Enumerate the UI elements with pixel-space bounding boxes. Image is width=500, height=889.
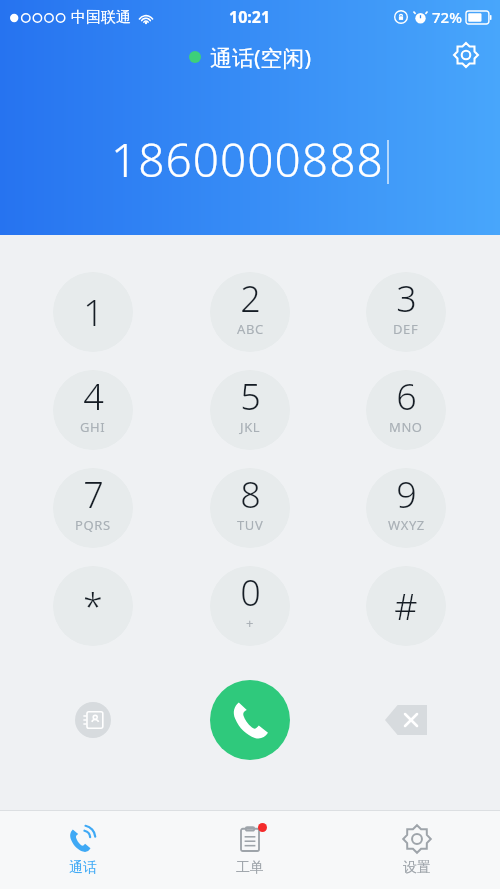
- button[interactable]: 0: [210, 566, 290, 646]
- button[interactable]: *: [53, 566, 133, 646]
- staticText: JKL: [240, 418, 261, 436]
- staticText: 中国联通: [71, 8, 131, 27]
- button[interactable]: 3: [366, 272, 446, 352]
- button[interactable]: #: [366, 566, 446, 646]
- button[interactable]: 9: [366, 468, 446, 548]
- staticText: 1860000888: [111, 128, 384, 191]
- button[interactable]: 6: [366, 370, 446, 450]
- staticText: 通话(空闲): [210, 42, 312, 72]
- button[interactable]: Delete: [380, 698, 432, 742]
- button[interactable]: 通话: [0, 811, 166, 889]
- staticText: 10:21: [229, 6, 271, 28]
- button[interactable]: Call: [210, 680, 290, 760]
- button[interactable]: Contacts: [71, 698, 115, 742]
- button[interactable]: 7: [53, 468, 133, 548]
- staticText: 4: [83, 372, 104, 421]
- staticText: 通话: [69, 859, 97, 877]
- staticText: 2: [240, 274, 261, 323]
- button[interactable]: 工单: [166, 811, 333, 889]
- staticText: 设置: [403, 859, 431, 877]
- staticText: 1: [83, 288, 104, 337]
- button[interactable]: Settings: [444, 33, 488, 77]
- staticText: *: [83, 582, 103, 631]
- staticText: +: [246, 614, 255, 632]
- staticText: 72%: [432, 7, 462, 27]
- staticText: 5: [240, 372, 261, 421]
- staticText: #: [394, 582, 418, 631]
- staticText: 工单: [236, 859, 264, 877]
- staticText: WXYZ: [388, 516, 425, 534]
- button[interactable]: 设置: [333, 811, 500, 889]
- staticText: 6: [396, 372, 417, 421]
- staticText: GHI: [80, 418, 106, 436]
- staticText: 9: [396, 470, 417, 519]
- staticText: DEF: [393, 320, 419, 338]
- staticText: ABC: [237, 320, 264, 338]
- staticText: 3: [396, 274, 417, 323]
- staticText: PQRS: [75, 516, 111, 534]
- staticText: 8: [240, 470, 261, 519]
- button[interactable]: 5: [210, 370, 290, 450]
- button[interactable]: 2: [210, 272, 290, 352]
- staticText: TUV: [237, 516, 264, 534]
- staticText: 0: [240, 568, 261, 617]
- button[interactable]: 4: [53, 370, 133, 450]
- staticText: MNO: [389, 418, 423, 436]
- button[interactable]: 8: [210, 468, 290, 548]
- staticText: 7: [83, 470, 104, 519]
- button[interactable]: 1: [53, 272, 133, 352]
